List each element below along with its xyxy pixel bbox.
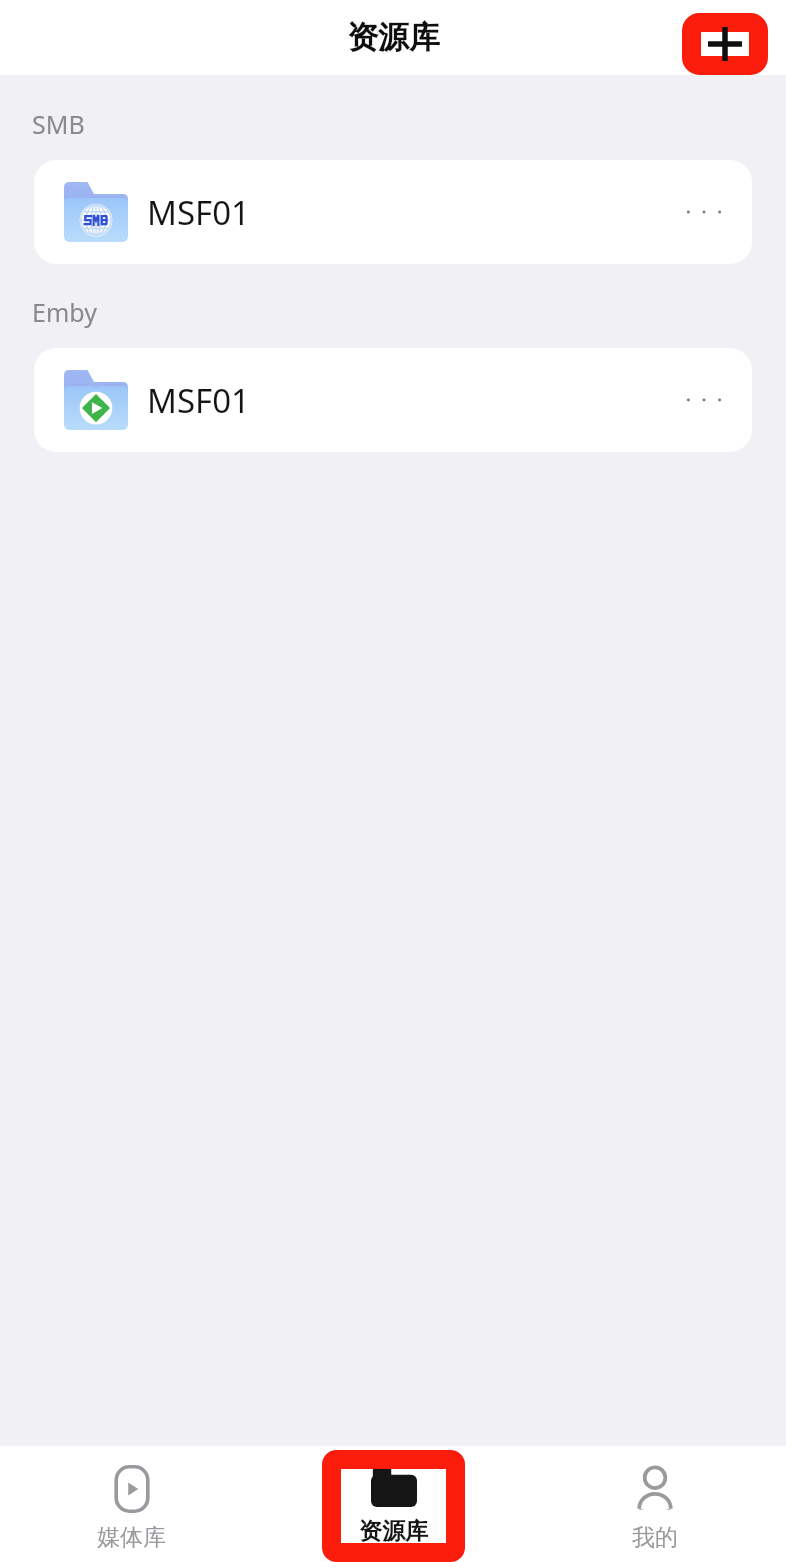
button[interactable]: 我的 (632, 1446, 678, 1562)
staticText: 我的 (632, 1523, 678, 1552)
staticText: SMB (32, 107, 85, 141)
button[interactable]: Add resource (682, 13, 768, 75)
button[interactable]: MSF01 (34, 160, 752, 264)
staticText: MSF01 (147, 190, 668, 235)
staticText: MSF01 (147, 378, 668, 423)
button[interactable]: MSF01 (34, 348, 752, 452)
button[interactable]: 媒体库 (97, 1446, 166, 1562)
button[interactable]: 资源库 (359, 1446, 428, 1562)
staticText: 资源库 (347, 18, 440, 57)
button[interactable]: More options (668, 364, 740, 436)
staticText: 资源库 (359, 1517, 428, 1546)
staticText: Emby (32, 295, 97, 329)
button[interactable]: More options (668, 176, 740, 248)
staticText: 媒体库 (97, 1523, 166, 1552)
